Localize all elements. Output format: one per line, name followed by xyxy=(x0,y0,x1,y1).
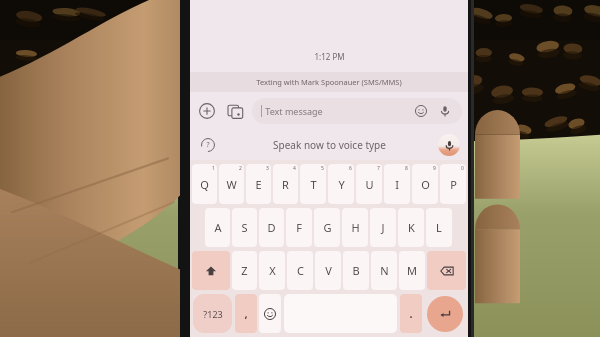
staticText: M xyxy=(407,263,417,278)
button[interactable]: Comma xyxy=(235,294,257,333)
button[interactable]: Emoji xyxy=(259,294,281,333)
button[interactable]: U xyxy=(356,164,382,204)
button[interactable]: Backspace xyxy=(427,251,466,290)
staticText: Z xyxy=(241,263,248,278)
staticText: O xyxy=(421,177,430,192)
button[interactable]: Enter xyxy=(427,296,463,332)
button[interactable]: Period xyxy=(400,294,422,333)
button[interactable]: Q xyxy=(192,164,217,204)
button[interactable]: Emoji xyxy=(413,103,429,119)
staticText: Text message xyxy=(265,105,323,117)
button[interactable]: Add attachment xyxy=(196,100,218,122)
button[interactable]: F xyxy=(286,208,312,247)
button[interactable]: Voice input xyxy=(437,103,453,119)
button[interactable]: Shift xyxy=(192,251,230,290)
staticText: D xyxy=(267,220,276,235)
staticText: 3 xyxy=(266,165,269,172)
staticText: R xyxy=(282,177,289,192)
staticText: 1:12 PM xyxy=(314,51,345,62)
staticText: 8 xyxy=(405,165,408,172)
staticText: V xyxy=(325,263,332,278)
button[interactable]: V xyxy=(315,251,341,290)
staticText: 2 xyxy=(239,165,242,172)
staticText: , xyxy=(244,306,248,321)
button[interactable]: J xyxy=(370,208,396,247)
button[interactable]: Help xyxy=(198,135,218,155)
staticText: A xyxy=(214,220,222,235)
staticText: Texting with Mark Spoonauer (SMS/MMS) xyxy=(256,77,402,87)
staticText: P xyxy=(450,177,457,192)
staticText: 5 xyxy=(321,165,324,172)
staticText: Q xyxy=(200,177,209,192)
staticText: 6 xyxy=(349,165,352,172)
button[interactable]: B xyxy=(343,251,369,290)
button[interactable]: W xyxy=(219,164,244,204)
button[interactable]: I xyxy=(384,164,410,204)
staticText: K xyxy=(408,220,415,235)
button[interactable]: R xyxy=(273,164,298,204)
button[interactable]: Microphone xyxy=(438,134,460,156)
staticText: S xyxy=(241,220,248,235)
staticText: B xyxy=(352,263,360,278)
button[interactable]: O xyxy=(412,164,438,204)
staticText: X xyxy=(269,263,276,278)
staticText: 1 xyxy=(212,165,215,172)
staticText: L xyxy=(436,220,442,235)
staticText: 7 xyxy=(377,165,380,172)
button[interactable]: G xyxy=(314,208,340,247)
button[interactable]: Z xyxy=(232,251,257,290)
button[interactable]: N xyxy=(371,251,397,290)
button[interactable]: M xyxy=(399,251,425,290)
staticText: E xyxy=(255,177,262,192)
staticText: U xyxy=(365,177,374,192)
staticText: F xyxy=(296,220,302,235)
button[interactable]: T xyxy=(300,164,326,204)
staticText: . xyxy=(409,306,413,321)
staticText: H xyxy=(351,220,360,235)
staticText: 0 xyxy=(461,165,464,172)
staticText: ?123 xyxy=(203,308,223,320)
button[interactable]: S xyxy=(232,208,257,247)
staticText: J xyxy=(381,220,385,235)
button[interactable]: C xyxy=(287,251,313,290)
button[interactable]: D xyxy=(259,208,284,247)
staticText: 4 xyxy=(293,165,296,172)
staticText: W xyxy=(226,177,237,192)
button[interactable]: P xyxy=(440,164,466,204)
staticText: N xyxy=(380,263,389,278)
staticText: G xyxy=(323,220,332,235)
button[interactable]: X xyxy=(259,251,285,290)
button[interactable]: Gallery xyxy=(224,100,246,122)
button[interactable]: Text message xyxy=(252,98,462,124)
button[interactable]: E xyxy=(246,164,271,204)
staticText: Y xyxy=(338,177,345,192)
staticText: C xyxy=(297,263,304,278)
staticText: 9 xyxy=(433,165,436,172)
staticText: ? xyxy=(206,140,210,150)
button[interactable]: L xyxy=(426,208,452,247)
button[interactable]: K xyxy=(398,208,424,247)
staticText: T xyxy=(310,177,317,192)
staticText: I xyxy=(395,177,399,192)
button[interactable]: A xyxy=(205,208,230,247)
button[interactable]: H xyxy=(342,208,368,247)
button[interactable]: ?123 xyxy=(193,294,232,333)
button[interactable]: Y xyxy=(328,164,354,204)
staticText: Speak now to voice type xyxy=(273,138,386,152)
